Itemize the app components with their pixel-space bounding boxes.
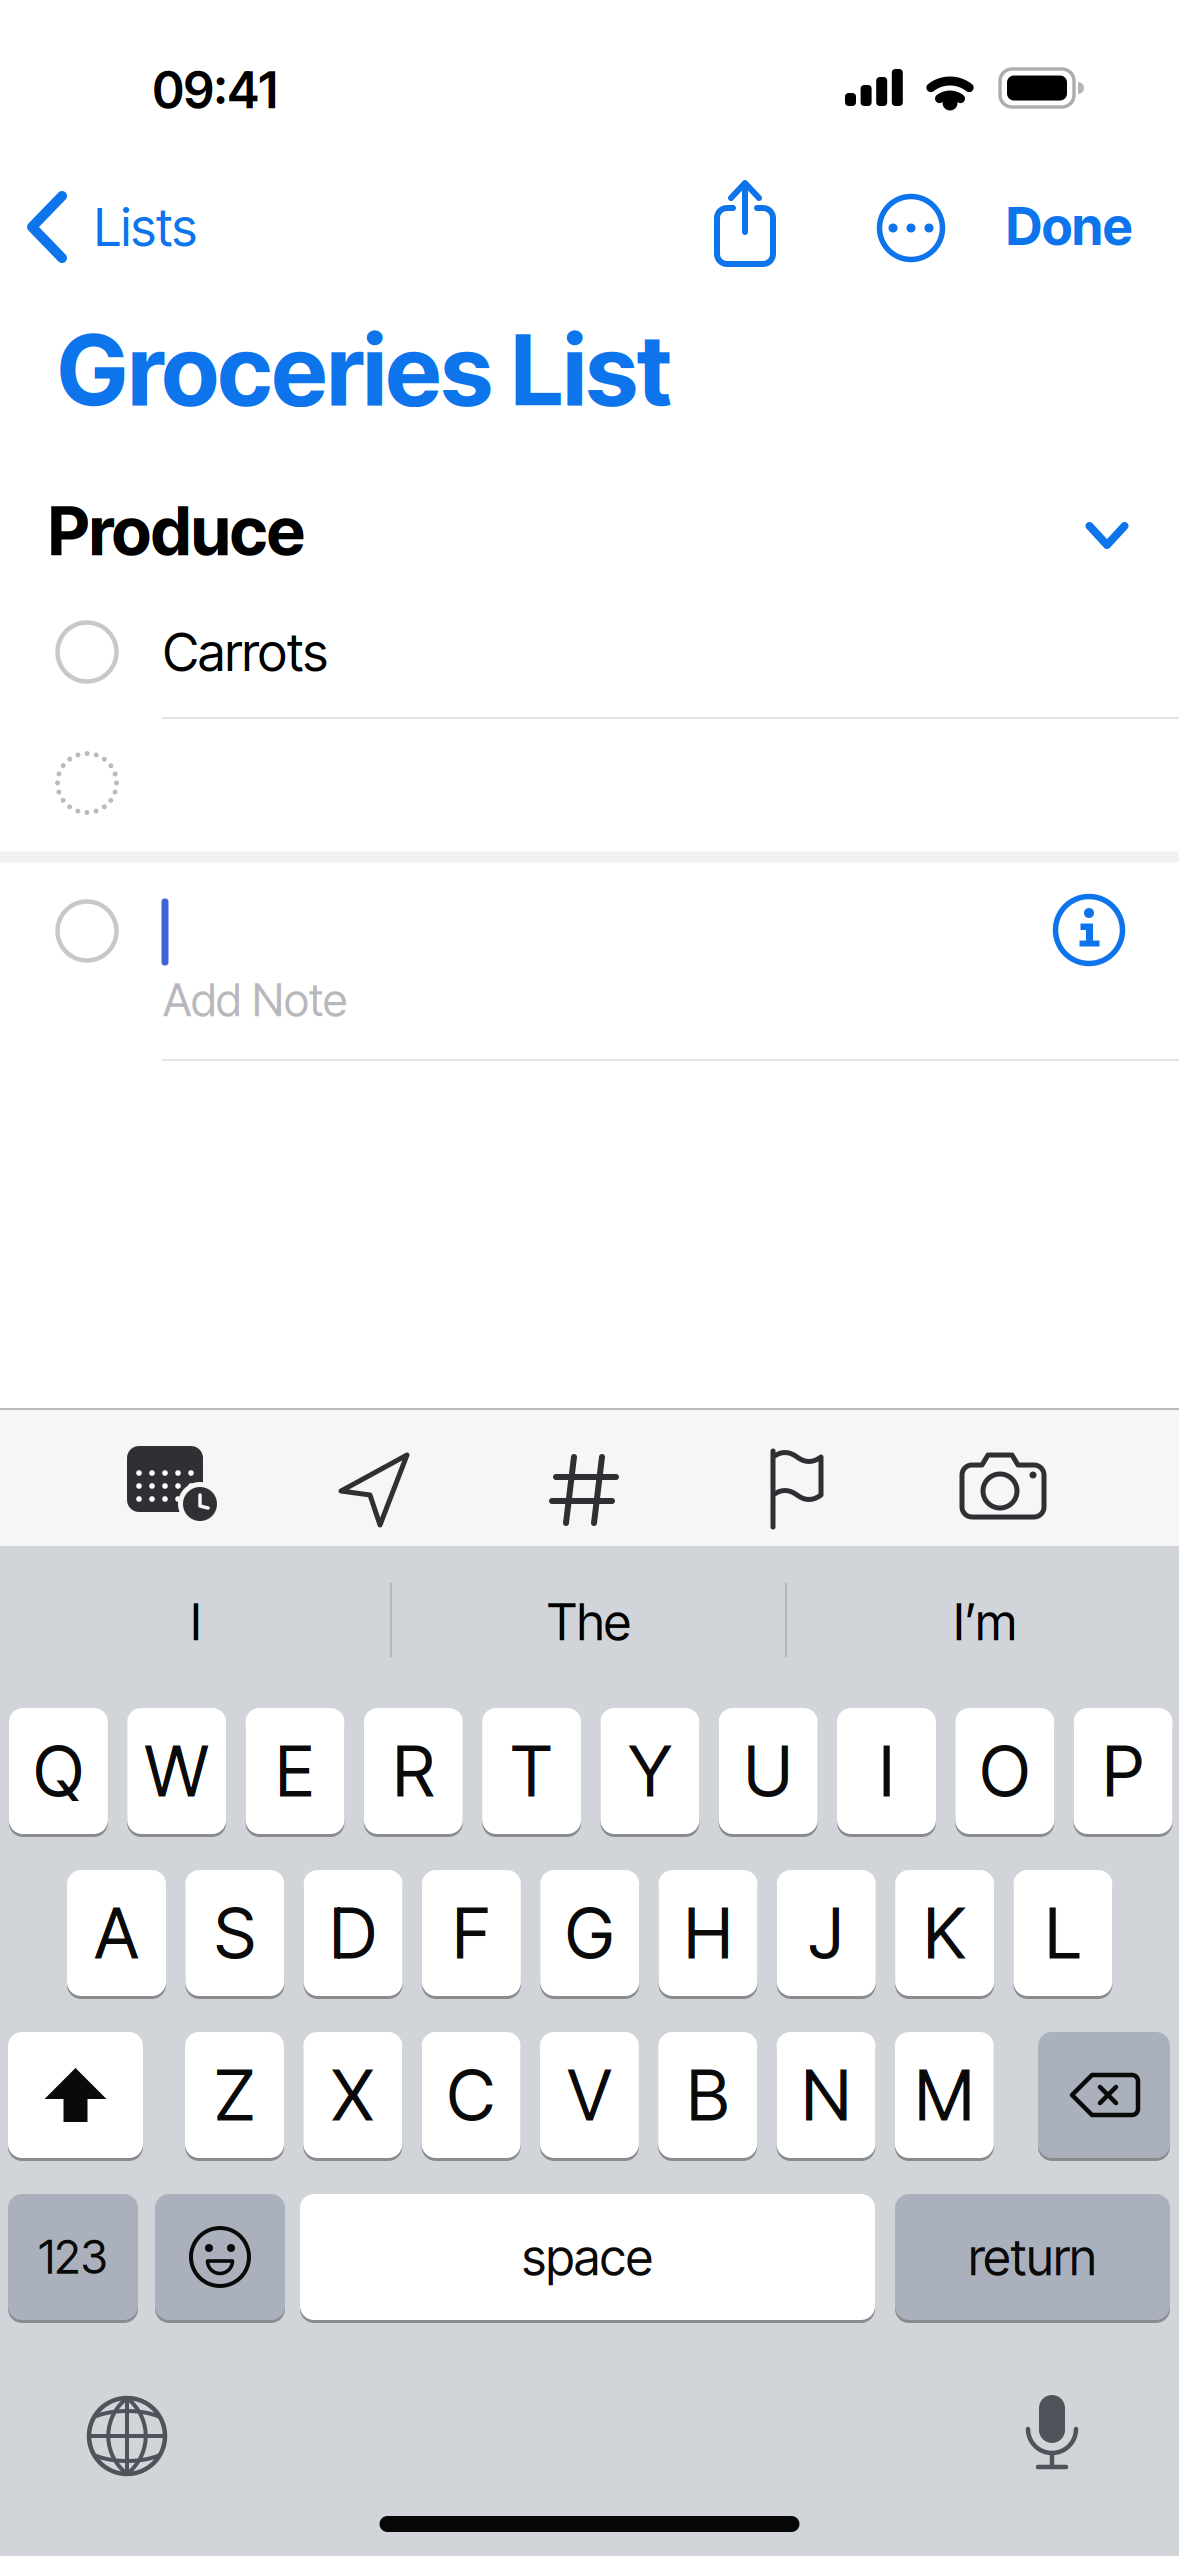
button[interactable]: Dictation [1007, 2391, 1097, 2481]
staticText: X [332, 2053, 374, 2137]
button[interactable]: D [304, 1868, 403, 1998]
button[interactable]: Add Note [163, 960, 663, 1040]
button[interactable]: Q [9, 1706, 108, 1836]
staticText: K [924, 1891, 966, 1975]
button[interactable]: W [127, 1706, 226, 1836]
staticText: O [980, 1729, 1030, 1813]
button[interactable]: Add Date [117, 1433, 227, 1533]
button[interactable]: Z [185, 2030, 284, 2160]
staticText: E [275, 1729, 314, 1813]
button[interactable]: Add Tag [534, 1433, 634, 1533]
staticText: Q [33, 1729, 83, 1813]
button[interactable]: I [837, 1706, 936, 1836]
button[interactable]: U [719, 1706, 818, 1836]
button[interactable]: G [540, 1868, 639, 1998]
button[interactable]: B [658, 2030, 757, 2160]
staticText: F [452, 1891, 490, 1975]
staticText: U [744, 1729, 793, 1813]
button[interactable]: Y [600, 1706, 699, 1836]
button[interactable]: Emoji [155, 2192, 285, 2322]
button[interactable]: I’m [795, 1562, 1175, 1682]
button[interactable]: return [895, 2192, 1170, 2322]
button[interactable]: J [777, 1868, 876, 1998]
button[interactable]: 123 [8, 2192, 138, 2322]
staticText: return [968, 2227, 1096, 2287]
staticText: Add Note [163, 973, 347, 1027]
button[interactable]: Done [1006, 194, 1132, 257]
button[interactable]: H [658, 1868, 757, 1998]
staticText: W [145, 1729, 209, 1813]
button[interactable]: Complete Carrots [57, 622, 116, 681]
staticText: Y [628, 1729, 671, 1813]
button[interactable]: I [6, 1562, 386, 1682]
staticText: C [447, 2053, 495, 2137]
button[interactable]: space [300, 2192, 875, 2322]
button[interactable]: N [776, 2030, 875, 2160]
button[interactable]: C [422, 2030, 521, 2160]
staticText: I [190, 1592, 201, 1652]
staticText: The [547, 1592, 631, 1652]
staticText: G [565, 1891, 614, 1975]
button[interactable]: A [67, 1868, 166, 1998]
staticText: 09:41 [152, 60, 277, 120]
staticText: P [1103, 1729, 1144, 1813]
button[interactable]: Shift [8, 2030, 143, 2160]
staticText: Produce [48, 490, 305, 572]
staticText: Z [214, 2053, 254, 2137]
staticText: N [801, 2053, 850, 2137]
button[interactable]: K [895, 1868, 994, 1998]
button[interactable]: S [185, 1868, 284, 1998]
button[interactable]: Add Photo [948, 1433, 1058, 1533]
staticText: H [684, 1891, 732, 1975]
button[interactable]: X [303, 2030, 402, 2160]
button[interactable]: Details [1044, 885, 1134, 975]
staticText: Lists [94, 195, 197, 258]
button[interactable]: V [540, 2030, 639, 2160]
button[interactable]: Carrots [163, 597, 1113, 707]
button[interactable]: Next Keyboard [82, 2391, 172, 2481]
staticText: Carrots [163, 620, 328, 683]
button[interactable]: Complete reminder [57, 901, 116, 960]
staticText: I’m [953, 1592, 1016, 1652]
staticText: B [687, 2053, 729, 2137]
button[interactable]: More [866, 183, 956, 273]
button[interactable]: Lists [26, 172, 286, 282]
staticText: J [809, 1891, 844, 1975]
staticText: A [94, 1891, 138, 1975]
button[interactable]: T [482, 1706, 581, 1836]
button[interactable]: F [422, 1868, 521, 1998]
staticText: S [214, 1891, 255, 1975]
button[interactable]: Share [695, 174, 795, 274]
button[interactable]: The [399, 1562, 779, 1682]
button[interactable]: R [364, 1706, 463, 1836]
staticText: T [511, 1729, 553, 1813]
staticText: V [567, 2053, 611, 2137]
button[interactable]: Add Location [325, 1433, 425, 1533]
staticText: space [522, 2227, 653, 2287]
staticText: R [393, 1729, 434, 1813]
staticText: Groceries List [57, 311, 671, 429]
staticText: D [330, 1891, 377, 1975]
staticText: M [915, 2053, 974, 2137]
staticText: 123 [38, 2229, 107, 2285]
button[interactable]: Collapse Produce [1081, 518, 1132, 554]
staticText: L [1045, 1891, 1081, 1975]
button[interactable]: Flag [745, 1433, 845, 1533]
button[interactable]: P [1074, 1706, 1173, 1836]
button[interactable]: O [955, 1706, 1054, 1836]
button[interactable]: Delete [1038, 2030, 1170, 2160]
staticText: Done [1006, 194, 1132, 257]
staticText: I [879, 1729, 894, 1813]
button[interactable]: L [1013, 1868, 1112, 1998]
button[interactable]: E [245, 1706, 344, 1836]
button[interactable]: M [895, 2030, 994, 2160]
